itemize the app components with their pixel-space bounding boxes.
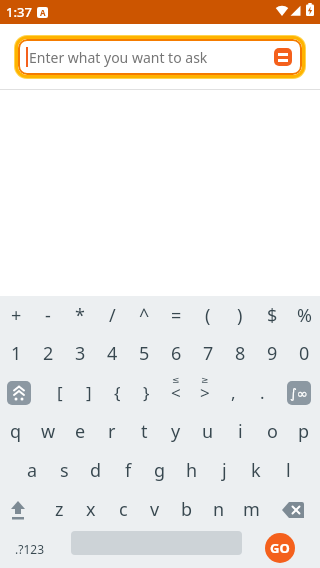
staticText: 5 [139,341,150,366]
staticText: q [10,419,22,444]
staticText: ≤ [172,375,180,385]
staticText: ∫∞ [290,386,308,401]
button[interactable]: m [235,490,267,529]
staticText: k [251,458,261,483]
button[interactable]: 0 [288,334,320,373]
button[interactable]: - [32,296,64,334]
button[interactable] [274,48,292,66]
button[interactable]: 1 [0,334,32,373]
staticText: 7 [203,341,214,366]
staticText: g [154,458,166,483]
button[interactable]: r [96,412,128,451]
staticText: ^ [139,303,150,328]
staticText: = [171,303,182,328]
button[interactable]: f [112,451,144,490]
button[interactable]: = [160,296,192,334]
button[interactable]: GO [265,533,295,563]
button[interactable]: n [203,490,235,529]
button[interactable]: i [224,412,256,451]
button[interactable]: g [144,451,176,490]
staticText: .?123 [15,541,45,557]
button[interactable]: .?123 [0,529,60,568]
button[interactable]: 2 [32,334,64,373]
button[interactable]: d [80,451,112,490]
button[interactable]: { [103,373,132,412]
button[interactable]: + [0,296,32,334]
staticText: a [27,458,38,483]
staticText: r [108,419,116,444]
button[interactable] [0,490,43,529]
staticText: s [60,458,69,483]
button[interactable]: w [32,412,64,451]
button[interactable]: 7 [192,334,224,373]
staticText: ≥ [201,375,209,385]
button[interactable]: } [132,373,161,412]
staticText: - [45,303,51,328]
button[interactable]: . [248,373,277,412]
staticText: $ [267,303,278,328]
button[interactable]: z [43,490,75,529]
staticText: h [186,458,198,483]
button[interactable]: [ [45,373,74,412]
button[interactable]: t [128,412,160,451]
button[interactable]: ] [74,373,103,412]
staticText: Enter what you want to ask [29,48,208,67]
button[interactable]: / [96,296,128,334]
button[interactable]: 8 [224,334,256,373]
button[interactable]: ( [192,296,224,334]
button[interactable]: ∫∞ [277,373,320,412]
staticText: 6 [171,341,182,366]
button[interactable]: q [0,412,32,451]
button[interactable]: 9 [256,334,288,373]
staticText: A [40,7,46,18]
button[interactable]: 6 [160,334,192,373]
button[interactable]: ) [224,296,256,334]
staticText: d [90,458,102,483]
staticText: l [286,458,291,483]
button[interactable]: ^ [128,296,160,334]
staticText: [ [57,381,63,404]
button[interactable]: b [171,490,203,529]
button[interactable]: s [48,451,80,490]
staticText: < [171,381,181,404]
button[interactable]: h [176,451,208,490]
button[interactable]: ≤ [161,373,190,412]
button[interactable]: 3 [64,334,96,373]
button[interactable]: l [272,451,304,490]
staticText: c [119,497,128,522]
staticText: 4 [107,341,118,366]
staticText: b [181,497,193,522]
button[interactable]: y [160,412,192,451]
staticText: 1 [11,341,22,366]
button[interactable]: Enter what you want to ask [14,35,306,79]
button[interactable]: u [192,412,224,451]
staticText: ] [86,381,92,404]
staticText: u [202,419,214,444]
staticText: 9 [267,341,278,366]
button[interactable]: o [256,412,288,451]
button[interactable]: j [208,451,240,490]
staticText: / [109,303,116,328]
staticText: 0 [299,341,310,366]
button[interactable]: k [240,451,272,490]
button[interactable]: % [288,296,320,334]
button[interactable]: c [107,490,139,529]
button[interactable] [0,373,45,412]
button[interactable]: , [219,373,248,412]
staticText: o [267,419,278,444]
button[interactable]: p [288,412,320,451]
button[interactable]: 5 [128,334,160,373]
button[interactable]: ≥ [190,373,219,412]
button[interactable]: 4 [96,334,128,373]
button[interactable]: a [16,451,48,490]
button[interactable]: x [75,490,107,529]
button[interactable]: v [139,490,171,529]
button[interactable] [267,490,320,529]
button[interactable]: $ [256,296,288,334]
staticText: 1:37 [6,3,32,21]
button[interactable]: * [64,296,96,334]
button[interactable]: e [64,412,96,451]
staticText: v [150,497,160,522]
staticText: ( [205,303,211,328]
